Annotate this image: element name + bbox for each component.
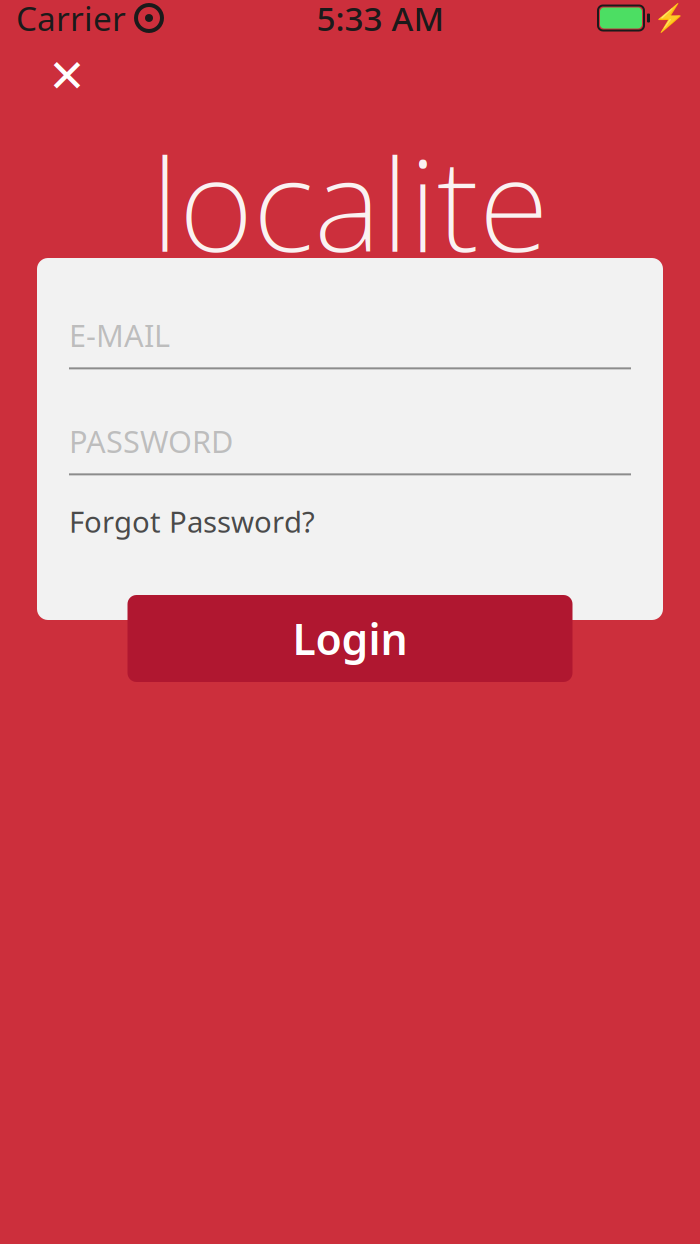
button[interactable]: Forgot Password? bbox=[69, 496, 315, 547]
button[interactable]: Close bbox=[39, 48, 95, 104]
staticText: 5:33 AM bbox=[316, 0, 444, 40]
staticText: E-MAIL bbox=[69, 315, 170, 355]
staticText: Carrier bbox=[16, 0, 126, 40]
staticText: Forgot Password? bbox=[69, 502, 315, 541]
staticText: ✕ bbox=[48, 50, 86, 102]
staticText: ⚡ bbox=[653, 3, 686, 33]
staticText: localite bbox=[151, 117, 549, 287]
staticText: PASSWORD bbox=[69, 421, 233, 461]
staticText: Login bbox=[292, 610, 407, 667]
button[interactable]: Login bbox=[127, 595, 572, 682]
